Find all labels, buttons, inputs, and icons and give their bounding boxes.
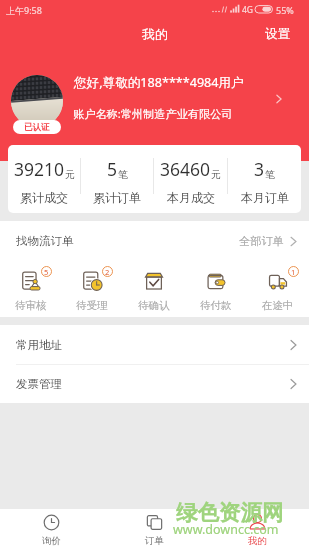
staticText: 上午9:58 [6, 4, 42, 16]
staticText: 累计订单 [93, 190, 141, 205]
staticText: 待确认 [138, 299, 170, 312]
button[interactable]: 5 [0, 253, 61, 312]
staticText: 1 [291, 267, 296, 277]
button[interactable]: 发票管理 [0, 365, 309, 403]
staticText: 55% [276, 4, 294, 16]
staticText: 5 [44, 267, 49, 277]
button[interactable]: 1 [247, 253, 309, 312]
staticText: 本月订单 [241, 190, 289, 205]
other: 订单 [146, 514, 163, 531]
staticText: 我的 [142, 26, 168, 42]
staticText: 笔 [265, 168, 275, 181]
staticText: 发票管理 [16, 377, 62, 391]
staticText: 您好,尊敬的188****4984用户 [74, 74, 244, 91]
staticText: 绿色资源网 [176, 499, 284, 526]
staticText: 待审核 [15, 299, 47, 312]
button[interactable]: 5 [81, 145, 153, 205]
staticText: 3 [254, 157, 265, 181]
button[interactable]: 2 [61, 253, 123, 312]
staticText: 元 [211, 168, 221, 181]
staticText: 待付款 [200, 299, 232, 312]
button[interactable]: 设置 [253, 21, 309, 47]
staticText: 36460 [160, 157, 211, 181]
button[interactable]: 待付款 [185, 253, 247, 312]
button[interactable]: 订单 [103, 509, 206, 547]
staticText: www.downcc.com [173, 521, 279, 538]
button[interactable]: 全部订单 [239, 234, 297, 248]
staticText: 5 [107, 157, 118, 181]
staticText: 39210 [14, 157, 65, 181]
staticText: 笔 [118, 168, 128, 181]
button[interactable]: 已认证 [0, 0, 309, 161]
other: 询价 [43, 514, 60, 531]
staticText: 4G [242, 4, 254, 16]
button[interactable]: 3 [228, 145, 301, 205]
staticText: 设置 [265, 26, 290, 42]
staticText: 找物流订单 [16, 234, 74, 248]
staticText: 在途中 [262, 299, 294, 312]
button[interactable]: 询价 [0, 509, 103, 547]
staticText: 待受理 [76, 299, 108, 312]
staticText: 2 [105, 267, 110, 277]
button[interactable]: 常用地址 [0, 325, 309, 364]
staticText: 全部订单 [239, 234, 284, 248]
button[interactable]: 我的 [206, 509, 309, 547]
staticText: 累计成交 [20, 190, 68, 205]
button[interactable]: 36460 [154, 145, 227, 205]
staticText: 询价 [42, 535, 61, 547]
staticText: 元 [65, 168, 75, 181]
button[interactable]: 39210 [8, 145, 80, 205]
staticText: 已认证 [24, 122, 50, 133]
button[interactable]: 待确认 [123, 253, 185, 312]
staticText: 本月成交 [167, 190, 215, 205]
staticText: 我的 [248, 535, 267, 547]
staticText: 账户名称:常州制造产业有限公司 [73, 106, 233, 121]
staticText: 常用地址 [16, 338, 62, 352]
other: 我的 [249, 514, 266, 531]
staticText: 订单 [145, 535, 164, 547]
